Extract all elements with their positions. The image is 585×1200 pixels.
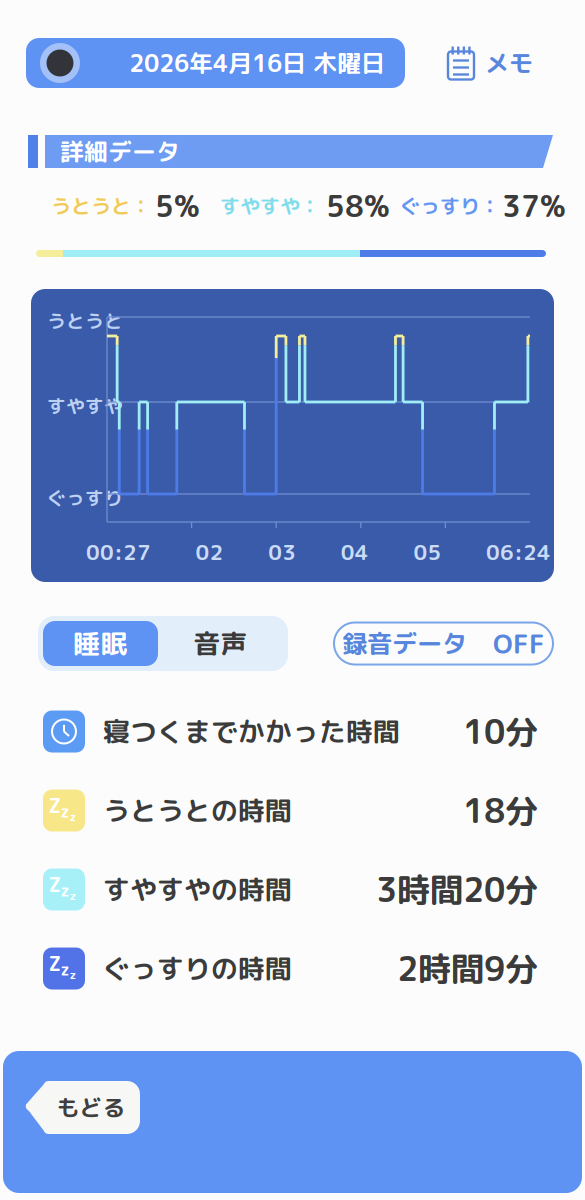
staticText: 00:27 bbox=[86, 537, 151, 567]
button[interactable]: 寝つくまでかかった時間 bbox=[43, 692, 538, 771]
button[interactable]: 2026年4月16日 木曜日 bbox=[26, 38, 405, 88]
button[interactable]: Z bbox=[43, 771, 538, 850]
staticText: Z bbox=[48, 870, 61, 898]
staticText: 睡眠 bbox=[73, 625, 127, 662]
staticText: 2026年4月16日 木曜日 bbox=[129, 46, 385, 80]
button[interactable]: Z bbox=[43, 929, 538, 1008]
staticText: Z bbox=[48, 949, 61, 977]
staticText: 18分 bbox=[463, 787, 538, 834]
staticText: ぐっすりの時間 bbox=[103, 950, 292, 987]
staticText: 録音データ bbox=[342, 626, 467, 661]
button[interactable]: 録音データ bbox=[334, 622, 553, 664]
staticText: z bbox=[69, 808, 76, 825]
staticText: うとうとの時間 bbox=[103, 792, 292, 829]
staticText: z bbox=[69, 966, 76, 983]
button[interactable]: 睡眠 bbox=[43, 621, 158, 666]
button[interactable]: 音声 bbox=[158, 621, 283, 666]
staticText: 58% bbox=[326, 185, 390, 226]
staticText: メモ bbox=[485, 46, 533, 80]
staticText: z bbox=[60, 800, 69, 823]
staticText: 37% bbox=[502, 185, 566, 226]
staticText: 5% bbox=[155, 185, 200, 226]
staticText: z bbox=[69, 887, 76, 904]
staticText: OFF bbox=[493, 625, 545, 662]
staticText: 2時間9分 bbox=[397, 945, 538, 992]
staticText: すやすや： bbox=[220, 192, 320, 220]
staticText: 10分 bbox=[463, 708, 538, 755]
button[interactable]: もどる bbox=[26, 1081, 140, 1134]
staticText: うとうと bbox=[47, 308, 123, 334]
staticText: 05 bbox=[413, 537, 441, 567]
staticText: すやすやの時間 bbox=[103, 871, 292, 908]
staticText: ぐっすり bbox=[47, 485, 123, 511]
staticText: 音声 bbox=[193, 625, 247, 662]
staticText: 04 bbox=[341, 537, 369, 567]
staticText: 06:24 bbox=[486, 537, 551, 567]
button[interactable]: メモ bbox=[442, 40, 539, 86]
staticText: 03 bbox=[268, 537, 296, 567]
staticText: 寝つくまでかかった時間 bbox=[103, 713, 400, 750]
staticText: うとうと： bbox=[51, 192, 151, 220]
staticText: Z bbox=[48, 791, 61, 819]
staticText: もどる bbox=[56, 1092, 125, 1123]
staticText: 詳細データ bbox=[60, 135, 180, 168]
staticText: z bbox=[60, 879, 69, 902]
staticText: 02 bbox=[196, 537, 224, 567]
button[interactable]: Z bbox=[43, 850, 538, 929]
staticText: すやすや bbox=[47, 393, 123, 419]
staticText: z bbox=[60, 958, 69, 981]
staticText: 3時間20分 bbox=[376, 866, 538, 913]
staticText: ぐっすり： bbox=[400, 192, 500, 220]
